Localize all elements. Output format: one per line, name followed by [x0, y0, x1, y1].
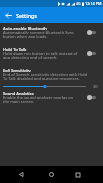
button[interactable]: Home: [43, 166, 60, 183]
staticText: 30: [93, 84, 98, 89]
staticText: To Talk disabled and question responses.: [3, 76, 80, 80]
staticText: app detecting end of speech.: [3, 55, 58, 59]
staticText: 12:14 PM: [85, 1, 102, 6]
button[interactable]: Hold To Talk: [0, 48, 103, 60]
staticText: Settings: [16, 12, 37, 19]
button[interactable]: Auto-enable Bluetooth: [0, 27, 103, 39]
staticText: Auto-enable Bluetooth: [3, 26, 47, 30]
button[interactable]: EoS sensitivity slider: [3, 84, 86, 89]
staticText: EoS Sensitivity: [3, 68, 31, 72]
button[interactable]: Auto-enable Bluetooth: [86, 26, 100, 38]
staticText: the main screen.: [3, 99, 35, 103]
staticText: Automatically connect Bluetooth Sync: [3, 30, 74, 34]
button[interactable]: Sound Analytics: [86, 91, 100, 103]
staticText: End of Speech sensitivity detection with…: [3, 72, 88, 76]
staticText: Hold down mic button to talk instead of: [3, 51, 78, 55]
staticText: Sound Analytics: [3, 91, 34, 95]
button[interactable]: EoS Sensitivity: [0, 69, 103, 89]
staticText: Enable the sound analyzer overlay on: [3, 95, 74, 99]
button[interactable]: Sound Analytics: [0, 92, 103, 104]
button[interactable]: Hold To Talk: [86, 47, 100, 59]
button[interactable]: Back: [13, 166, 30, 183]
button[interactable]: Recent apps: [69, 166, 86, 183]
staticText: button when app loads.: [3, 34, 48, 38]
button[interactable]: Back: [0, 7, 16, 23]
staticText: 4G: [76, 1, 81, 6]
staticText: Hold To Talk: [3, 47, 27, 51]
